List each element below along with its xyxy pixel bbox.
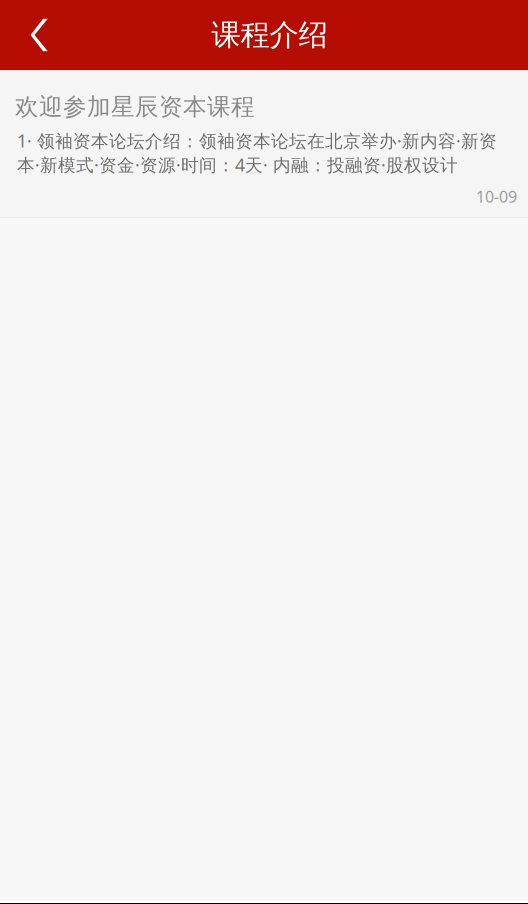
- staticText: 课程介绍: [211, 16, 327, 53]
- button[interactable]: Back: [0, 0, 79, 70]
- staticText: 欢迎参加星辰资本课程: [15, 92, 255, 122]
- staticText: 1· 领袖资本论坛介绍：领袖资本论坛在北京举办·新内容·新资本·新模式·资金·资…: [17, 129, 497, 177]
- button[interactable]: 欢迎参加星辰资本课程: [0, 70, 528, 219]
- staticText: 10-09: [476, 186, 517, 207]
